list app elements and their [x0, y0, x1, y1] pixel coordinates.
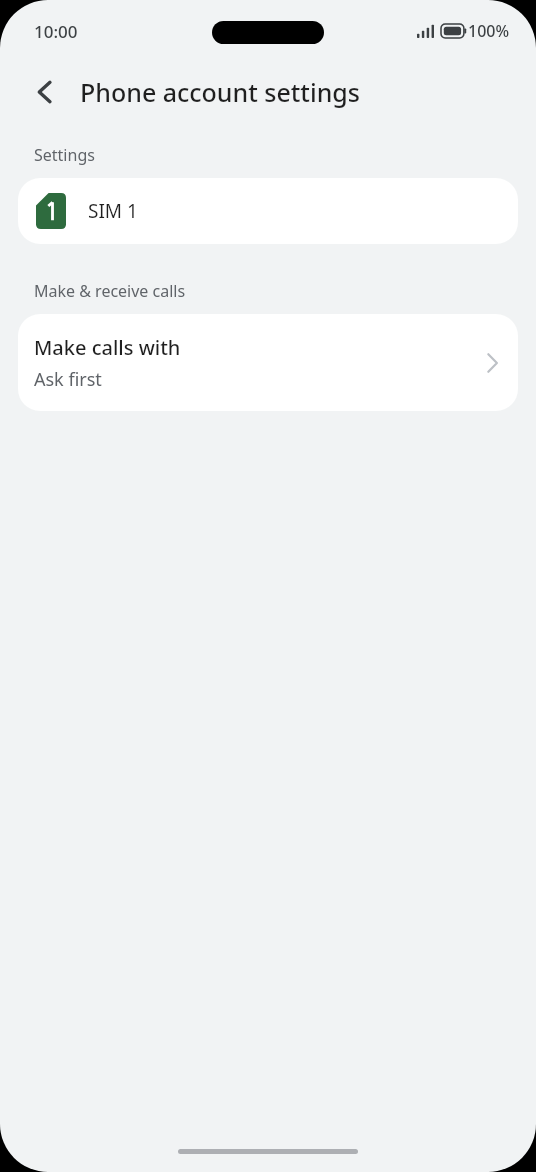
staticText: Make & receive calls [34, 280, 186, 302]
staticText: Make calls with [34, 334, 181, 361]
button[interactable]: Back [20, 68, 68, 116]
staticText: SIM 1 [88, 198, 138, 224]
staticText: Settings [34, 144, 95, 166]
button[interactable]: SIM 1 [18, 178, 518, 244]
button[interactable]: Make calls with [18, 314, 518, 411]
staticText: Ask first [34, 367, 102, 392]
staticText: 10:00 [34, 20, 78, 43]
staticText: Phone account settings [80, 75, 361, 109]
staticText: 100% [468, 20, 510, 42]
